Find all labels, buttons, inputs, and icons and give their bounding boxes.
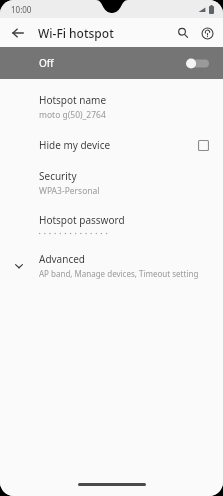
button[interactable]: Search <box>171 21 195 45</box>
button[interactable]: Hotspot name <box>0 85 223 129</box>
staticText: AP band, Manage devices, Timeout setting <box>39 268 199 279</box>
button[interactable]: Advanced <box>0 244 223 287</box>
button[interactable]: Security <box>0 161 223 205</box>
staticText: moto g(50)_2764 <box>39 109 106 121</box>
button[interactable]: Back <box>5 20 31 46</box>
button[interactable]: Hide my device <box>0 129 223 161</box>
staticText: Off <box>39 56 54 70</box>
staticText: Hotspot password <box>39 213 125 227</box>
staticText: Wi-Fi hotspot <box>38 25 114 41</box>
staticText: 10:00 <box>11 4 32 15</box>
button[interactable]: Off <box>0 47 223 79</box>
button[interactable]: Help <box>195 21 219 45</box>
staticText: WPA3-Personal <box>39 185 100 197</box>
staticText: Security <box>39 169 77 183</box>
staticText: Hotspot name <box>39 93 107 107</box>
staticText: Hide my device <box>39 138 111 152</box>
button[interactable]: Hotspot password <box>0 205 223 244</box>
staticText: Advanced <box>39 252 85 266</box>
